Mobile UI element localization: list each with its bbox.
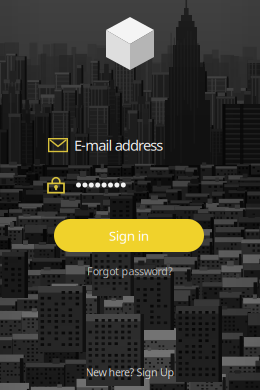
- button[interactable]: [0, 168, 260, 202]
- staticText: New here? Sign Up: [85, 365, 174, 379]
- staticText: Sign in: [109, 227, 149, 244]
- button[interactable]: New here? Sign Up: [65, 363, 195, 381]
- button[interactable]: Sign in: [54, 219, 204, 252]
- button[interactable]: Forgot password?: [70, 262, 190, 280]
- staticText: E-mail address: [74, 135, 163, 155]
- button[interactable]: E-mail address: [0, 128, 260, 162]
- staticText: Forgot password?: [87, 264, 173, 278]
